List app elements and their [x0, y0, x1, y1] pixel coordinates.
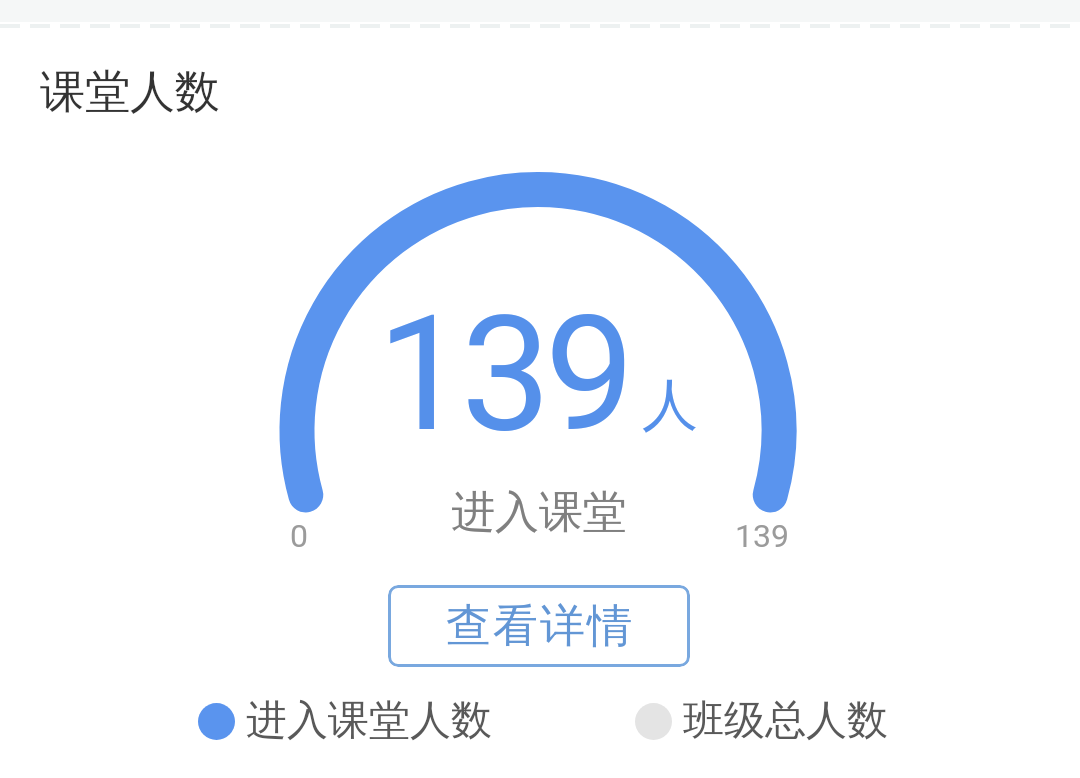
staticText: 班级总人数 [683, 695, 888, 747]
staticText: 查看详情 [445, 598, 633, 655]
staticText: 0 [290, 517, 308, 555]
staticText: 139 [377, 281, 629, 469]
button[interactable]: 查看详情 [388, 585, 690, 667]
staticText: 139 [735, 517, 789, 555]
staticText: 进入课堂人数 [246, 695, 492, 747]
staticText: 人 [642, 370, 698, 441]
staticText: 进入课堂 [451, 485, 627, 540]
staticText: 课堂人数 [40, 64, 220, 121]
